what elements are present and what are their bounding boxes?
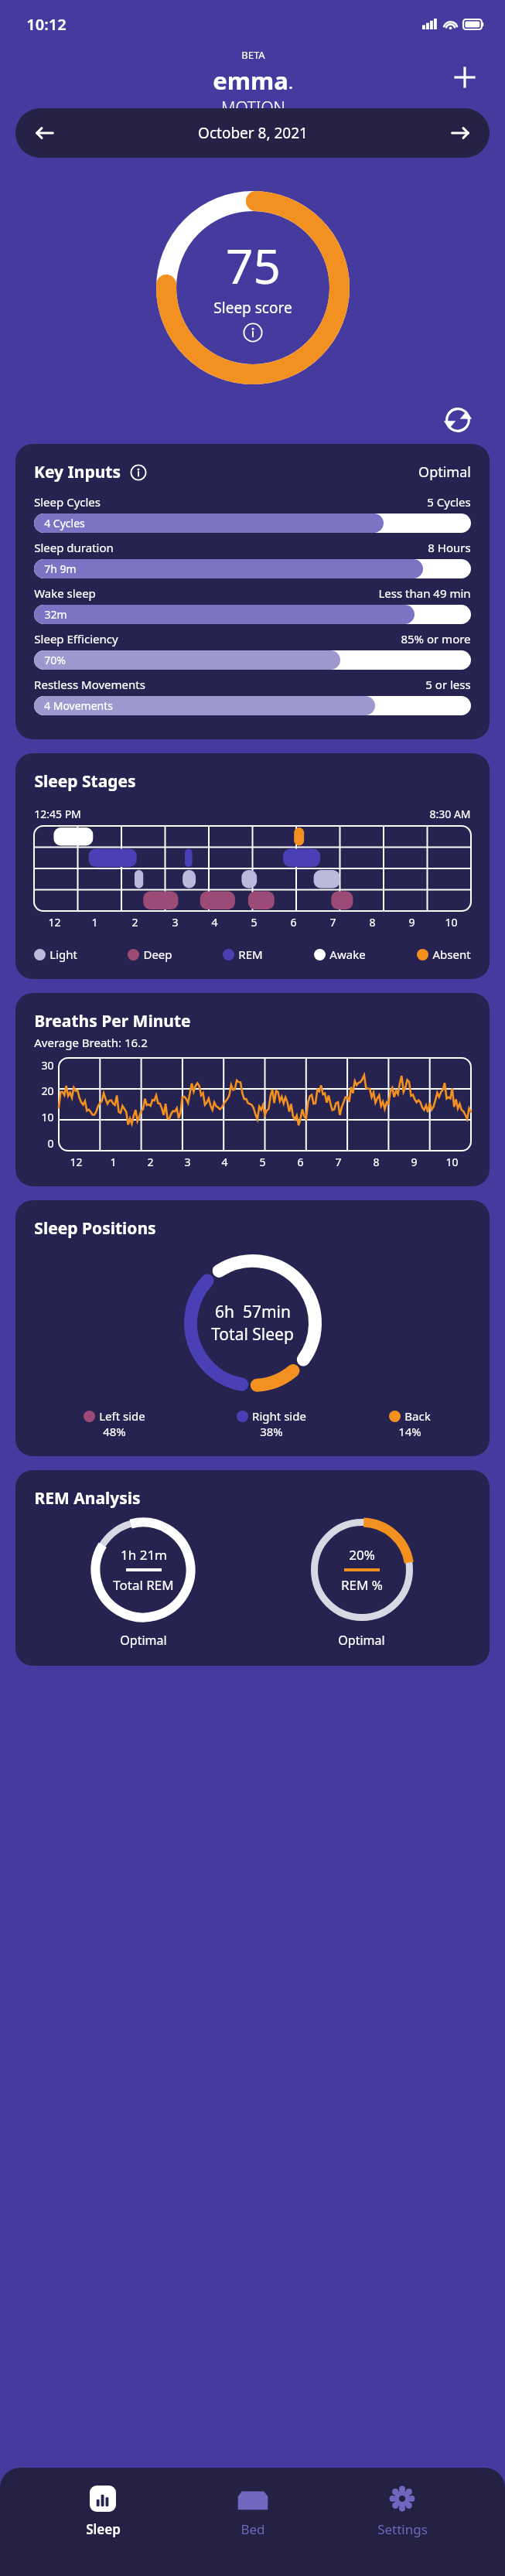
button[interactable]: Sleep score info xyxy=(243,322,263,343)
staticText: 20% xyxy=(349,1546,375,1564)
staticText: Awake xyxy=(329,947,366,962)
staticText: 4 Movements xyxy=(44,698,113,713)
staticText: 5 or less xyxy=(425,677,471,692)
staticText: . xyxy=(288,74,293,94)
staticText: REM xyxy=(238,947,263,962)
staticText: REM % xyxy=(341,1576,383,1594)
staticText: 3 xyxy=(172,915,179,930)
staticText: 3 xyxy=(184,1155,191,1169)
staticText: 5 xyxy=(259,1155,266,1169)
staticText: 75 xyxy=(226,233,281,298)
staticText: 4 xyxy=(211,915,218,930)
staticText: 0 xyxy=(47,1136,54,1151)
staticText: 12:45 PM xyxy=(34,807,81,821)
staticText: 12 xyxy=(48,915,61,930)
staticText: 7 xyxy=(335,1155,342,1169)
staticText: 20 xyxy=(41,1083,54,1098)
staticText: Left side xyxy=(99,1408,145,1424)
staticText: 10 xyxy=(445,915,458,930)
staticText: Breaths Per Minute xyxy=(34,1010,191,1032)
staticText: MOTION xyxy=(221,97,285,108)
staticText: Total REM xyxy=(113,1576,174,1594)
staticText: 8:30 AM xyxy=(429,807,471,821)
button[interactable]: Previous day xyxy=(29,118,60,148)
staticText: 10:12 xyxy=(26,14,67,35)
staticText: Absent xyxy=(432,947,471,962)
staticText: 9 xyxy=(411,1155,418,1169)
staticText: 6 xyxy=(290,915,297,930)
button[interactable]: Add xyxy=(449,62,480,93)
staticText: emma xyxy=(213,64,288,97)
staticText: 32m xyxy=(44,607,67,622)
staticText: 6h 57min xyxy=(215,1301,291,1323)
staticText: BETA xyxy=(241,48,265,62)
staticText: Back xyxy=(404,1408,431,1424)
staticText: Total Sleep xyxy=(211,1323,294,1346)
staticText: Sleep duration xyxy=(34,540,114,555)
staticText: 1 xyxy=(110,1155,117,1169)
staticText: 10 xyxy=(445,1155,459,1169)
staticText: Deep xyxy=(143,947,172,962)
button[interactable]: Previous day xyxy=(15,108,490,158)
staticText: 8 Hours xyxy=(428,540,471,555)
staticText: 4 Cycles xyxy=(44,516,85,531)
staticText: 5 xyxy=(251,915,258,930)
staticText: 9 xyxy=(408,915,415,930)
staticText: Less than 49 min xyxy=(378,585,471,601)
staticText: Average Breath: 16.2 xyxy=(34,1035,148,1050)
staticText: Sleep Cycles xyxy=(34,494,101,510)
staticText: 5 Cycles xyxy=(427,494,471,510)
staticText: 85% or more xyxy=(401,631,471,647)
staticText: Sleep xyxy=(86,2520,121,2538)
button[interactable]: Next day xyxy=(445,118,476,148)
staticText: Optimal xyxy=(338,1632,385,1649)
staticText: Optimal xyxy=(418,462,471,482)
button[interactable]: Sleep xyxy=(56,2483,149,2538)
staticText: Optimal xyxy=(120,1632,167,1649)
staticText: 10 xyxy=(41,1110,54,1124)
staticText: 48% xyxy=(103,1424,126,1439)
staticText: 30 xyxy=(41,1058,54,1073)
staticText: Bed xyxy=(241,2520,265,2538)
staticText: 38% xyxy=(260,1424,283,1439)
staticText: 7h 9m xyxy=(44,561,77,576)
staticText: Settings xyxy=(377,2520,428,2538)
staticText: 8 xyxy=(369,915,376,930)
button[interactable]: Settings xyxy=(356,2483,449,2538)
staticText: Wake sleep xyxy=(34,585,96,601)
staticText: Light xyxy=(49,947,77,962)
staticText: 8 xyxy=(373,1155,380,1169)
staticText: Sleep score xyxy=(213,298,292,318)
staticText: 1h 21m xyxy=(121,1546,167,1564)
button[interactable]: Key Inputs xyxy=(15,444,490,739)
staticText: 14% xyxy=(398,1424,421,1439)
staticText: REM Analysis xyxy=(34,1487,141,1510)
staticText: Sleep Efficiency xyxy=(34,631,118,647)
button[interactable]: Sleep Positions xyxy=(15,1200,490,1456)
button[interactable]: Sleep Stages xyxy=(15,753,490,979)
button[interactable]: Breaths Per Minute xyxy=(15,993,490,1186)
button[interactable]: Key inputs info xyxy=(130,464,147,481)
staticText: Sleep Stages xyxy=(34,770,136,793)
staticText: 12 xyxy=(70,1155,83,1169)
staticText: Sleep Positions xyxy=(34,1217,156,1240)
button[interactable]: Refresh xyxy=(442,404,474,436)
staticText: 6 xyxy=(297,1155,304,1169)
staticText: 70% xyxy=(44,653,66,667)
staticText: Key Inputs xyxy=(34,461,121,483)
staticText: Restless Movements xyxy=(34,677,145,692)
staticText: 2 xyxy=(131,915,138,930)
staticText: 2 xyxy=(147,1155,154,1169)
button[interactable]: Bed xyxy=(206,2483,299,2538)
staticText: 7 xyxy=(329,915,336,930)
staticText: 1 xyxy=(91,915,98,930)
staticText: Right side xyxy=(252,1408,306,1424)
staticText: 4 xyxy=(221,1155,228,1169)
button[interactable]: REM Analysis xyxy=(15,1470,490,1666)
staticText: October 8, 2021 xyxy=(198,123,308,143)
